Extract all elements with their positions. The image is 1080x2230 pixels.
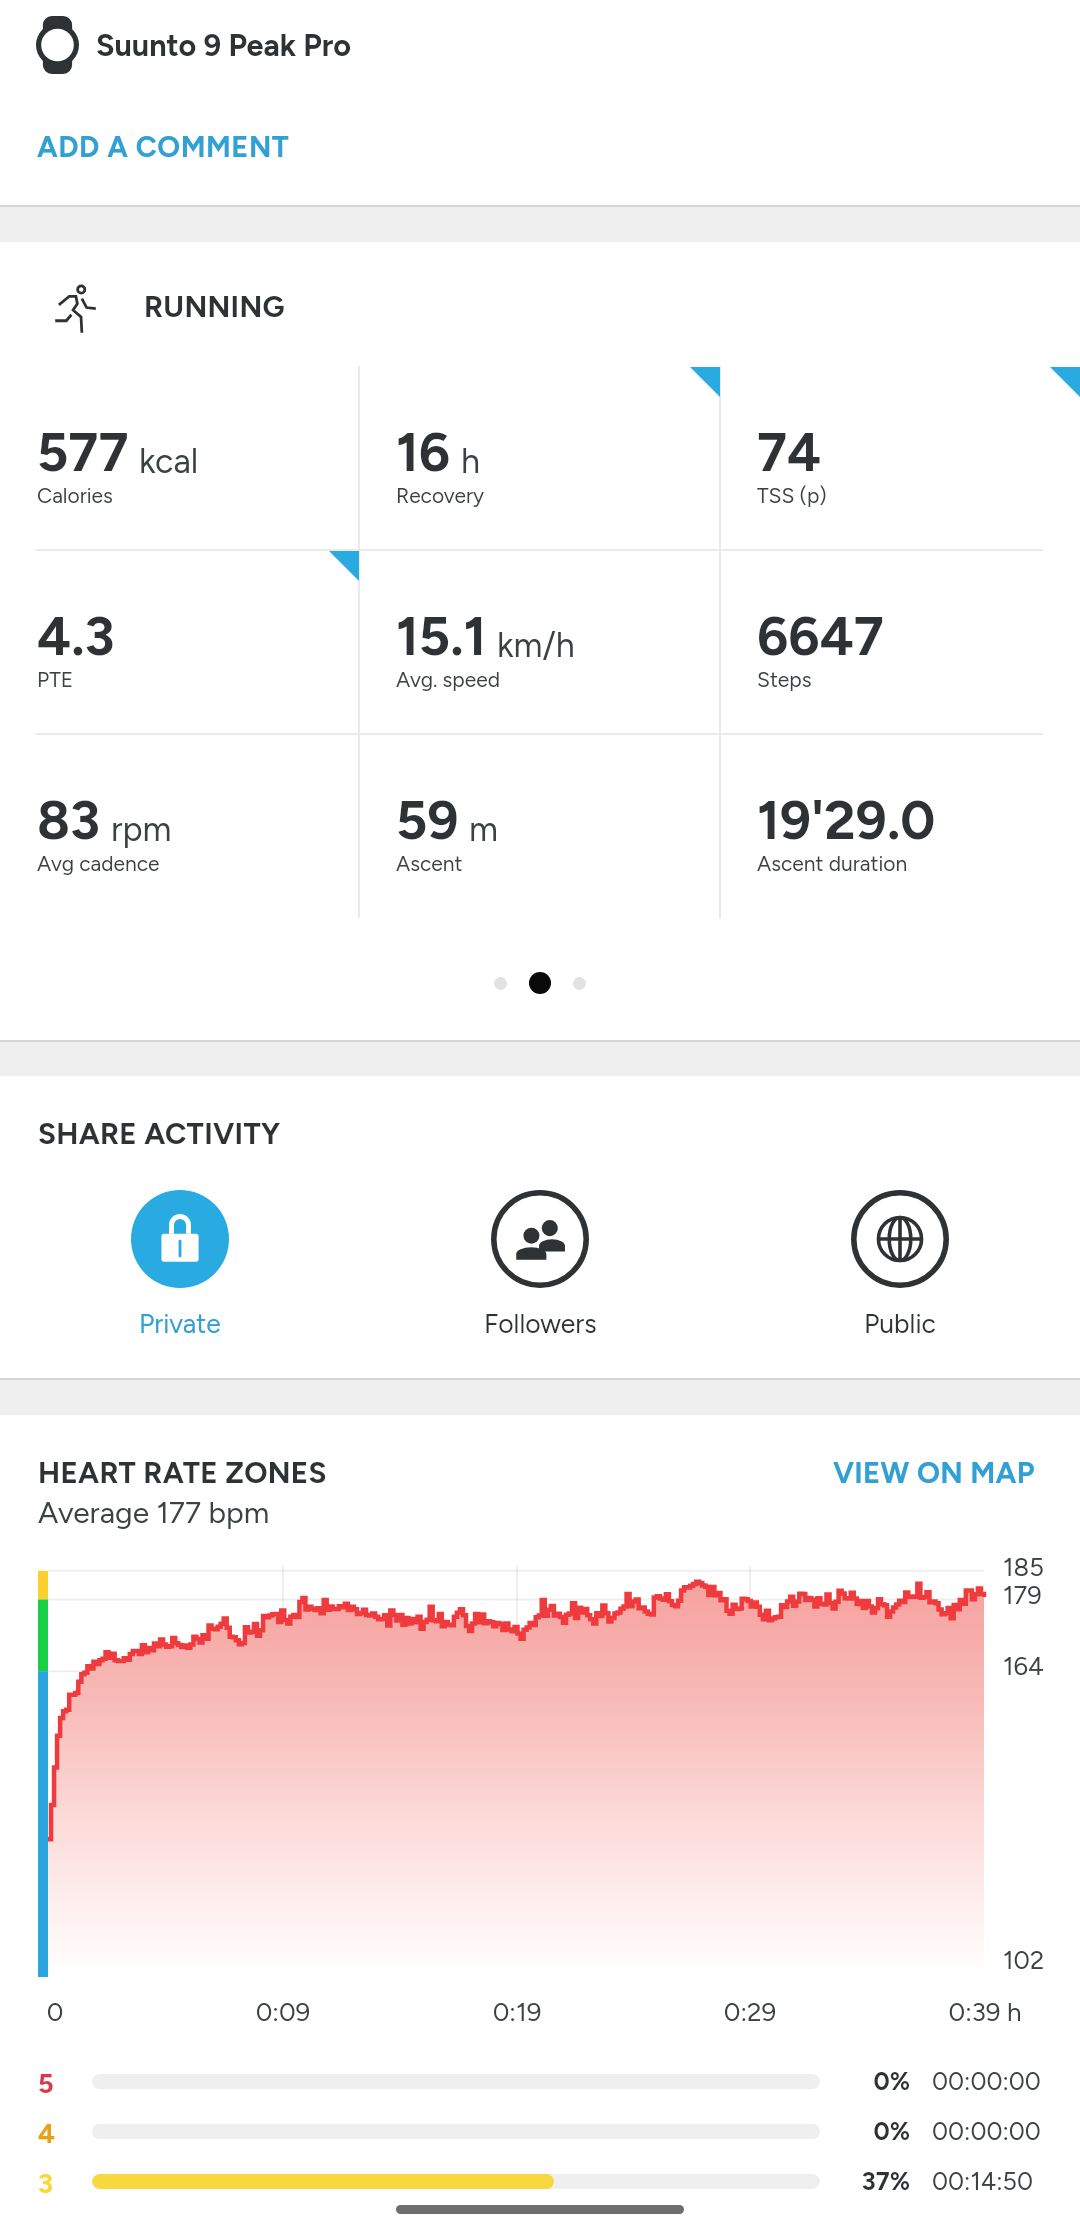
- other: Running activity: [55, 285, 96, 333]
- staticText: Avg. speed: [396, 667, 500, 692]
- button[interactable]: ADD A COMMENT: [0, 108, 1080, 184]
- button[interactable]: 3: [0, 2158, 1080, 2206]
- staticText: 0:39 h: [905, 1996, 1065, 2027]
- staticText: rpm: [111, 809, 172, 850]
- other: Suunto 9 Peak Pro watch: [36, 16, 79, 74]
- staticText: 102: [1003, 1945, 1045, 1976]
- staticText: 16: [396, 420, 451, 485]
- staticText: 0:29: [670, 1996, 830, 2027]
- staticText: 185: [1003, 1552, 1044, 1583]
- staticText: Public: [864, 1308, 936, 1340]
- button[interactable]: 74: [720, 366, 1080, 550]
- staticText: h: [461, 441, 480, 482]
- button[interactable]: 577: [0, 366, 359, 550]
- staticText: km/h: [497, 625, 575, 666]
- staticText: 3: [38, 2167, 54, 2199]
- staticText: Calories: [37, 483, 113, 508]
- staticText: 0:09: [203, 1996, 363, 2027]
- button[interactable]: Private: [0, 1190, 360, 1340]
- staticText: ADD A COMMENT: [37, 129, 290, 164]
- button[interactable]: 59: [359, 734, 720, 918]
- staticText: 4.3: [37, 604, 115, 669]
- staticText: Recovery: [396, 483, 485, 508]
- button[interactable]: VIEW ON MAP: [780, 1445, 1035, 1499]
- staticText: Private: [139, 1308, 221, 1340]
- staticText: 5: [38, 2067, 54, 2099]
- staticText: 19'29.0: [757, 788, 936, 853]
- staticText: Steps: [757, 667, 812, 692]
- staticText: Average 177 bpm: [38, 1494, 270, 1530]
- staticText: 6647: [757, 604, 884, 669]
- staticText: 00:00:00: [932, 2116, 1041, 2146]
- staticText: 0: [0, 1996, 135, 2027]
- staticText: Ascent: [396, 851, 463, 876]
- button[interactable]: 83: [0, 734, 359, 918]
- staticText: 00:14:50: [932, 2166, 1033, 2196]
- staticText: HEART RATE ZONES: [38, 1455, 327, 1490]
- button[interactable]: 19'29.0: [720, 734, 1080, 918]
- staticText: 164: [1003, 1651, 1044, 1682]
- button[interactable]: 4: [0, 2108, 1080, 2156]
- staticText: Ascent duration: [757, 851, 908, 876]
- staticText: 0:19: [437, 1996, 597, 2027]
- staticText: RUNNING: [144, 289, 285, 324]
- staticText: 577: [37, 420, 129, 485]
- button[interactable]: Public: [720, 1190, 1080, 1340]
- staticText: 0%: [830, 2066, 910, 2096]
- staticText: Followers: [484, 1308, 597, 1340]
- staticText: Suunto 9 Peak Pro: [96, 27, 351, 64]
- staticText: 15.1: [396, 604, 487, 669]
- button[interactable]: 16: [359, 366, 720, 550]
- staticText: PTE: [37, 667, 74, 692]
- staticText: VIEW ON MAP: [833, 1455, 1035, 1490]
- staticText: 37%: [830, 2166, 910, 2196]
- staticText: 179: [1003, 1580, 1042, 1611]
- staticText: 59: [396, 788, 459, 853]
- staticText: kcal: [139, 441, 199, 482]
- staticText: SHARE ACTIVITY: [38, 1116, 281, 1151]
- staticText: 00:00:00: [932, 2066, 1041, 2096]
- staticText: 0%: [830, 2116, 910, 2146]
- button[interactable]: 5: [0, 2058, 1080, 2106]
- button[interactable]: 4.3: [0, 550, 359, 734]
- staticText: TSS (p): [757, 483, 827, 508]
- staticText: m: [469, 809, 498, 850]
- staticText: 74: [757, 420, 822, 485]
- staticText: Avg cadence: [37, 851, 160, 876]
- staticText: 83: [37, 788, 101, 853]
- staticText: 4: [38, 2117, 56, 2149]
- button[interactable]: Followers: [360, 1190, 720, 1340]
- button[interactable]: 15.1: [359, 550, 720, 734]
- button[interactable]: 6647: [720, 550, 1080, 734]
